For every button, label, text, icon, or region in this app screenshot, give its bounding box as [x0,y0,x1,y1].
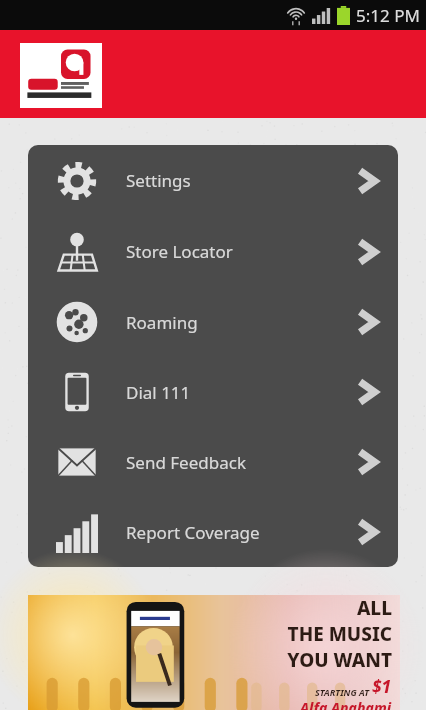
staticText: Store Locator [126,240,233,263]
staticText: Alfa Anghami [300,698,392,710]
button[interactable]: Alfa logo [20,43,102,108]
staticText: STARTING AT [315,686,372,698]
staticText: YOU WANT [287,647,392,673]
button[interactable]: Send Feedback [28,427,398,497]
staticText: 5:12 PM [356,4,420,27]
button[interactable]: Alfa Anghami advertisement [28,595,400,710]
button[interactable]: Report Coverage [28,497,398,567]
button[interactable]: Settings [28,145,398,216]
staticText: Dial 111 [126,381,191,404]
staticText: ALL [356,595,392,621]
staticText: Roaming [126,311,198,334]
staticText: $1 [372,675,392,698]
staticText: Send Feedback [126,451,246,474]
button[interactable]: Roaming [28,287,398,357]
staticText: THE MUSIC [287,621,392,647]
staticText: Report Coverage [126,521,260,544]
button[interactable]: Dial 111 [28,357,398,427]
staticText: Settings [126,169,191,192]
button[interactable]: Store Locator [28,216,398,287]
